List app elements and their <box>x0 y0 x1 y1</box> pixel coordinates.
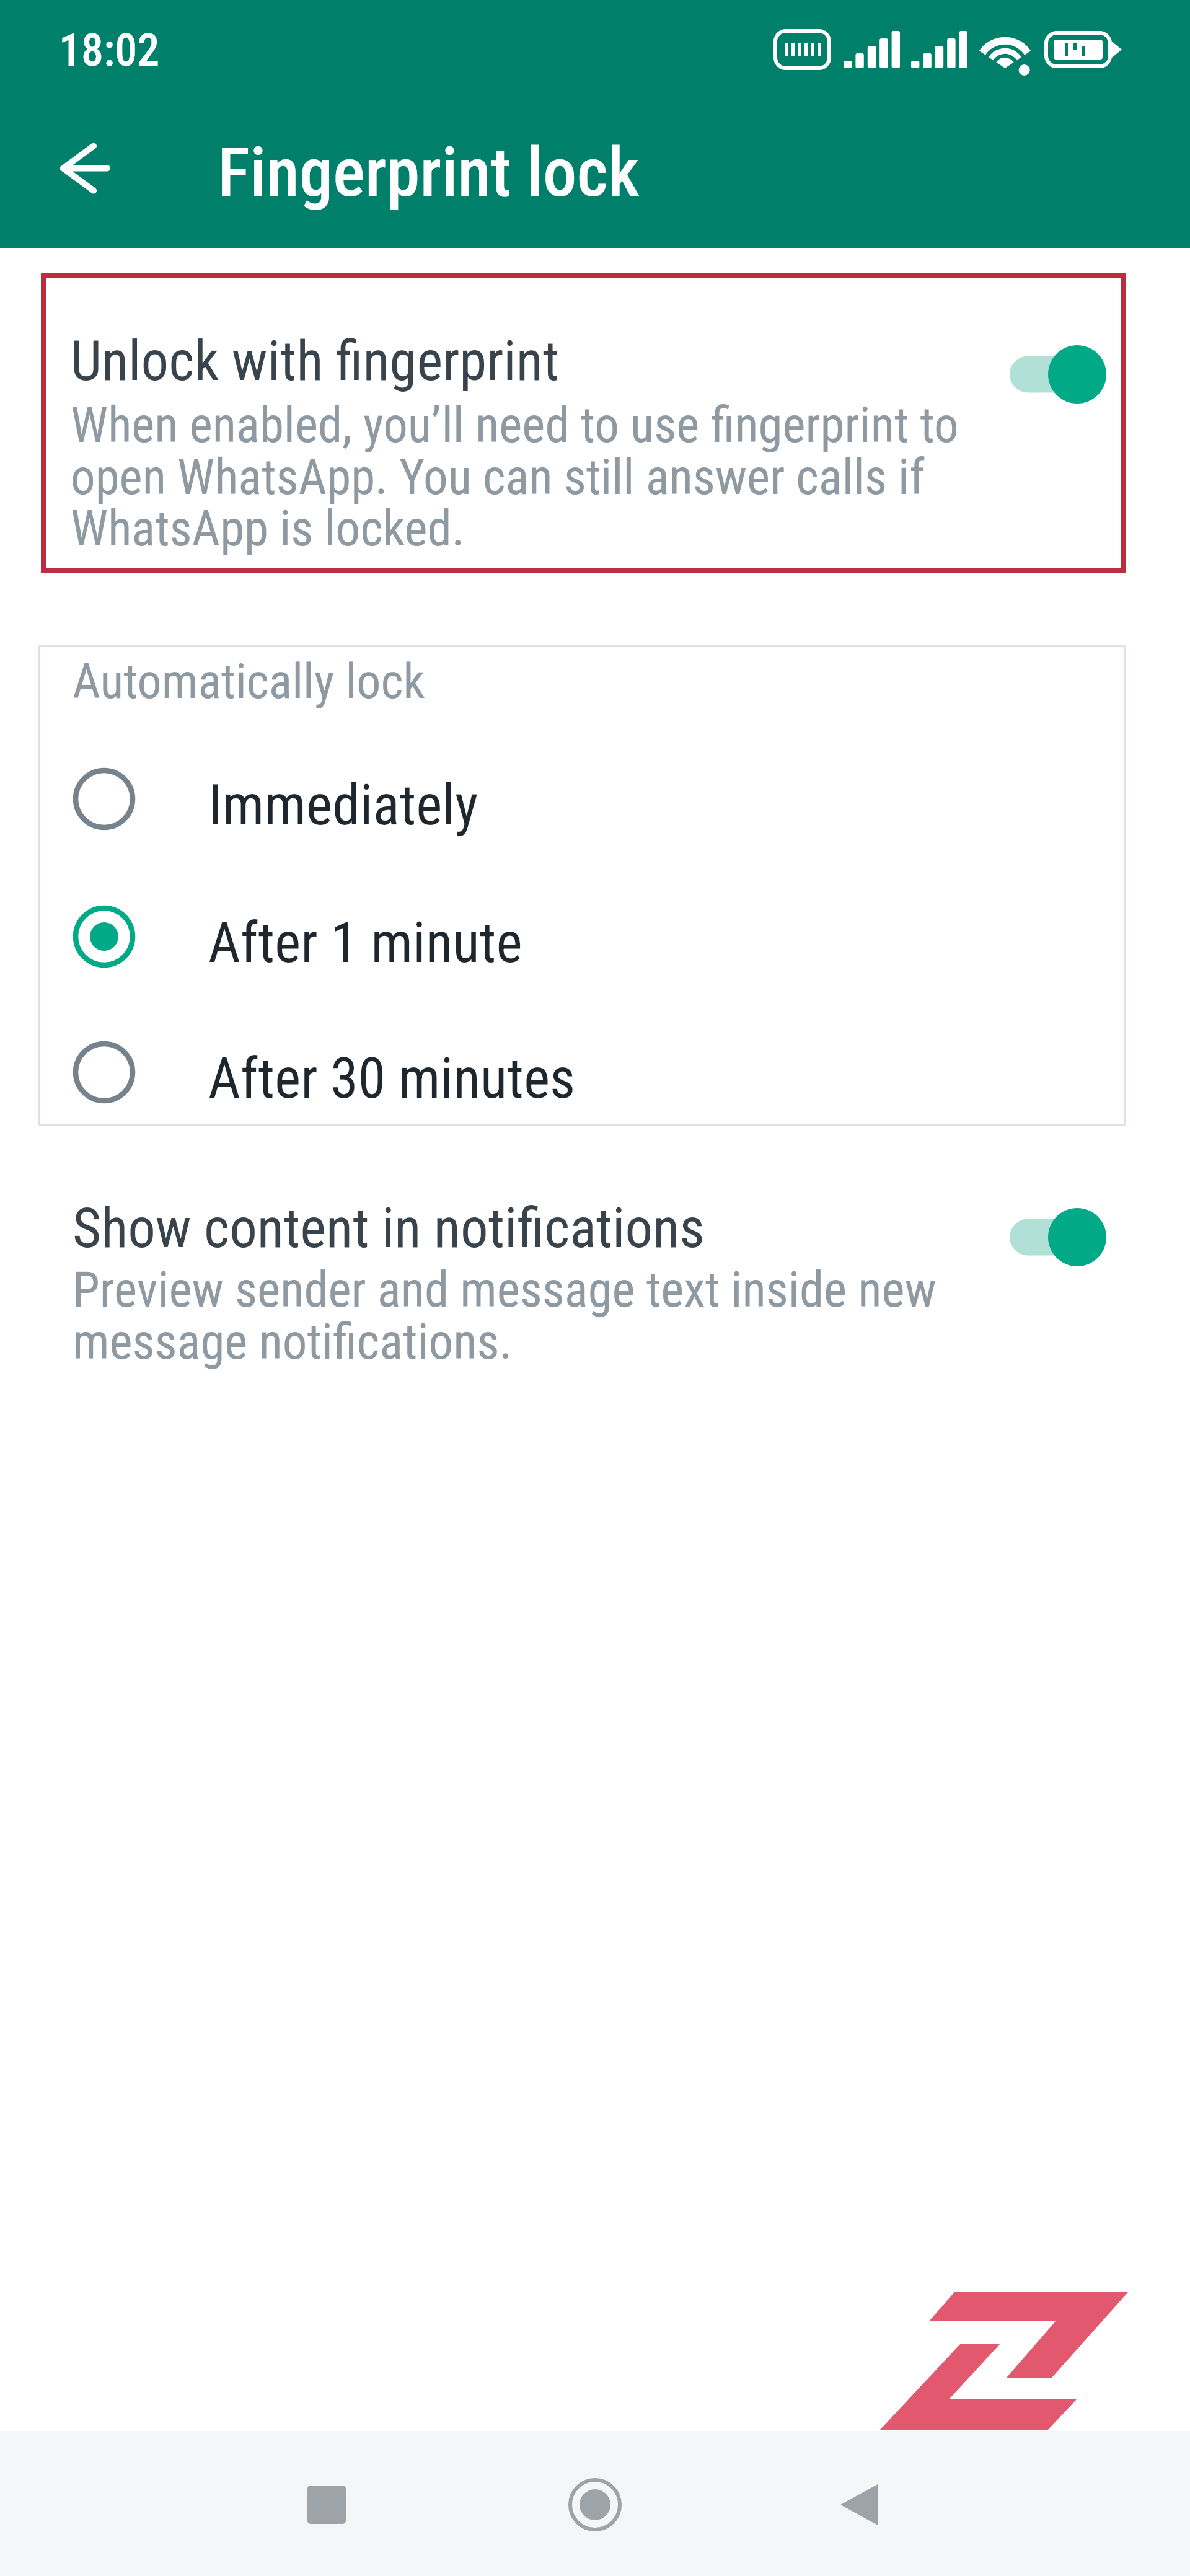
staticText: After 1 minute <box>208 911 522 976</box>
staticText: Fingerprint lock <box>218 133 640 213</box>
button[interactable]: After 1 minute <box>38 868 1126 1005</box>
button[interactable]: Recent apps <box>252 2435 401 2575</box>
button[interactable]: Immediately <box>38 731 1126 867</box>
button[interactable]: Home <box>521 2435 669 2575</box>
staticText: 18:02 <box>59 24 160 76</box>
staticText: Unlock with fingerprint <box>71 329 560 393</box>
button[interactable]: Unlock with fingerprint <box>41 273 1126 573</box>
button[interactable]: Back <box>785 2435 933 2575</box>
staticText: When enabled, you’ll need to use fingerp… <box>71 397 976 557</box>
button[interactable]: Show content in notifications <box>41 1165 1126 1370</box>
staticText: Show content in notifications <box>73 1196 705 1260</box>
button[interactable]: Back <box>40 123 130 213</box>
staticText: Automatically lock <box>73 653 425 710</box>
button[interactable]: After 30 minutes <box>38 1004 1126 1140</box>
staticText: Immediately <box>208 773 478 838</box>
staticText: Preview sender and message text inside n… <box>73 1261 977 1370</box>
staticText: After 30 minutes <box>208 1046 576 1111</box>
button[interactable]: Toggle <box>1010 328 1147 421</box>
button[interactable]: Toggle <box>1010 1191 1147 1284</box>
